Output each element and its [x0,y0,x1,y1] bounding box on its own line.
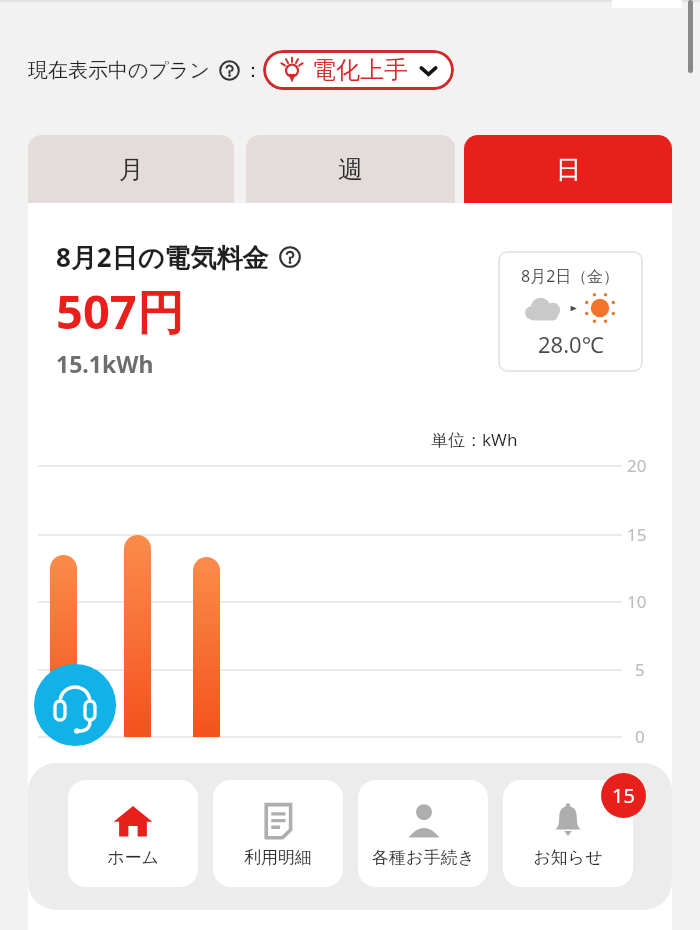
staticText: ホーム [107,847,159,868]
staticText: 8月2日の電気料金 [56,239,269,275]
staticText: お知らせ [533,847,603,868]
staticText: 各種お手続き [372,847,475,868]
button[interactable]: 日 [464,135,672,203]
staticText: 単位：kWh [431,428,518,451]
button[interactable]: 週 [246,135,455,203]
staticText: 利用明細 [244,847,312,868]
button[interactable]: 電化上手 [263,50,454,90]
button[interactable]: 月 [28,135,234,203]
staticText: 日 [556,154,581,185]
button[interactable]: ホーム [68,780,198,887]
button[interactable]: 各種お手続き [358,780,488,887]
staticText: ： [243,58,263,83]
button[interactable]: 利用明細 [213,780,343,887]
staticText: 507円 [56,279,184,343]
staticText: 0 [635,725,645,748]
staticText: 15 [612,782,635,809]
button[interactable]: 8月2日（金） [498,251,643,372]
staticText: 8月2日（金） [521,265,620,287]
staticText: 月 [119,154,144,185]
button[interactable]: お問い合わせ [34,664,116,746]
staticText: 5 [635,658,645,681]
staticText: 20 [627,454,647,477]
staticText: 15.1kWh [56,348,154,379]
staticText: 現在表示中のプラン [28,58,210,83]
staticText: 週 [338,154,363,185]
button[interactable]: お知らせ [503,780,633,887]
staticText: 15 [627,523,647,546]
staticText: 10 [627,590,647,613]
staticText: 28.0℃ [538,329,604,359]
staticText: 電化上手 [312,55,408,85]
